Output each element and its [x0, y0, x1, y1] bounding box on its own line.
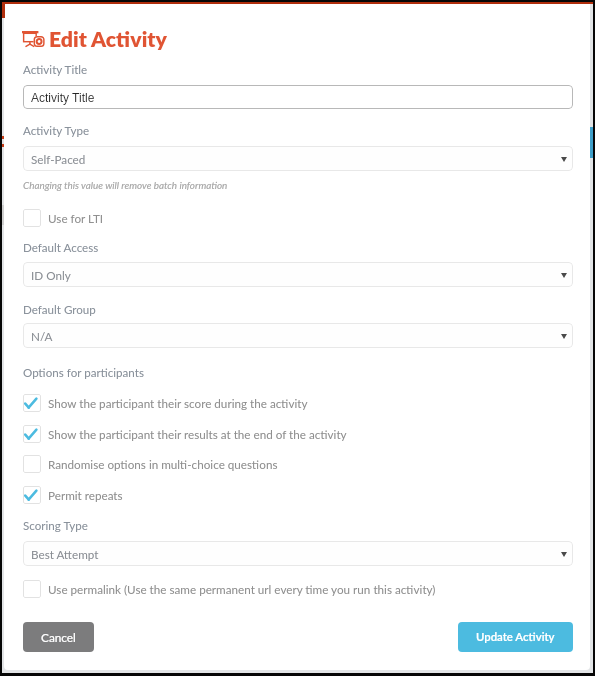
button[interactable]: Use for LTI: [23, 209, 104, 227]
staticText: Activity Type: [23, 124, 90, 138]
button[interactable]: Self-Paced: [23, 146, 573, 171]
staticText: Use permalink (Use the same permanent ur…: [48, 582, 436, 596]
other: Edit activity: [22, 31, 45, 48]
staticText: Default Group: [23, 303, 96, 317]
staticText: Edit Activity: [49, 26, 167, 51]
staticText: Show the participant their results at th…: [48, 427, 347, 441]
staticText: Use for LTI: [48, 211, 104, 225]
staticText: Permit repeats: [48, 488, 123, 502]
button[interactable]: Show the participant their results at th…: [23, 425, 347, 443]
button[interactable]: Randomise options in multi-choice questi…: [23, 455, 278, 473]
staticText: Update Activity: [476, 630, 555, 644]
staticText: Randomise options in multi-choice questi…: [48, 457, 278, 471]
staticText: N/A: [31, 329, 53, 343]
staticText: ID Only: [31, 268, 71, 282]
staticText: Show the participant their score during …: [48, 396, 308, 410]
button[interactable]: Best Attempt: [23, 541, 573, 566]
button[interactable]: Show the participant their score during …: [23, 394, 308, 412]
button[interactable]: Use permalink (Use the same permanent ur…: [23, 580, 436, 598]
button[interactable]: Cancel: [23, 622, 94, 652]
staticText: Cancel: [41, 630, 76, 644]
button[interactable]: Permit repeats: [23, 486, 123, 504]
button[interactable]: N/A: [23, 323, 573, 348]
staticText: Default Access: [23, 241, 99, 255]
staticText: Activity Title: [31, 91, 95, 104]
staticText: Scoring Type: [23, 519, 88, 533]
staticText: Options for participants: [23, 366, 144, 380]
staticText: Changing this value will remove batch in…: [23, 179, 228, 191]
staticText: Activity Title: [23, 63, 88, 77]
button[interactable]: Update Activity: [458, 622, 573, 652]
button[interactable]: ID Only: [23, 262, 573, 287]
staticText: Self-Paced: [31, 152, 86, 166]
staticText: Best Attempt: [31, 547, 99, 561]
button[interactable]: Activity Title: [23, 85, 573, 109]
